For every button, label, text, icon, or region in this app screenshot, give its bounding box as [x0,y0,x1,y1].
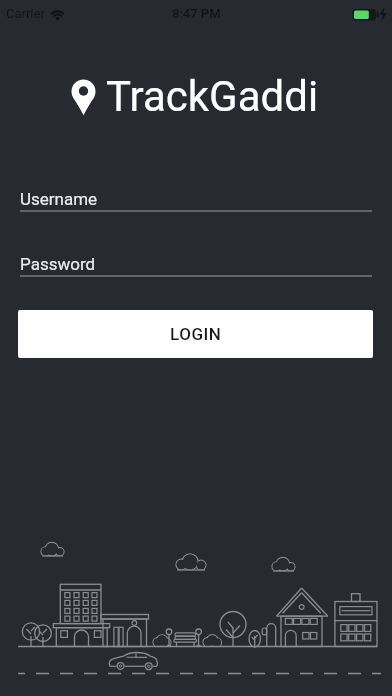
staticText: 8:47 PM [172,6,221,21]
staticText: TrackGaddi [106,72,319,121]
button[interactable]: LOGIN [18,310,373,358]
staticText: Username [20,189,98,209]
staticText: LOGIN [170,324,222,344]
staticText: Password [20,254,96,274]
button[interactable]: Username [0,185,392,215]
staticText: Carrier [6,6,45,21]
button[interactable]: Password [0,250,392,280]
